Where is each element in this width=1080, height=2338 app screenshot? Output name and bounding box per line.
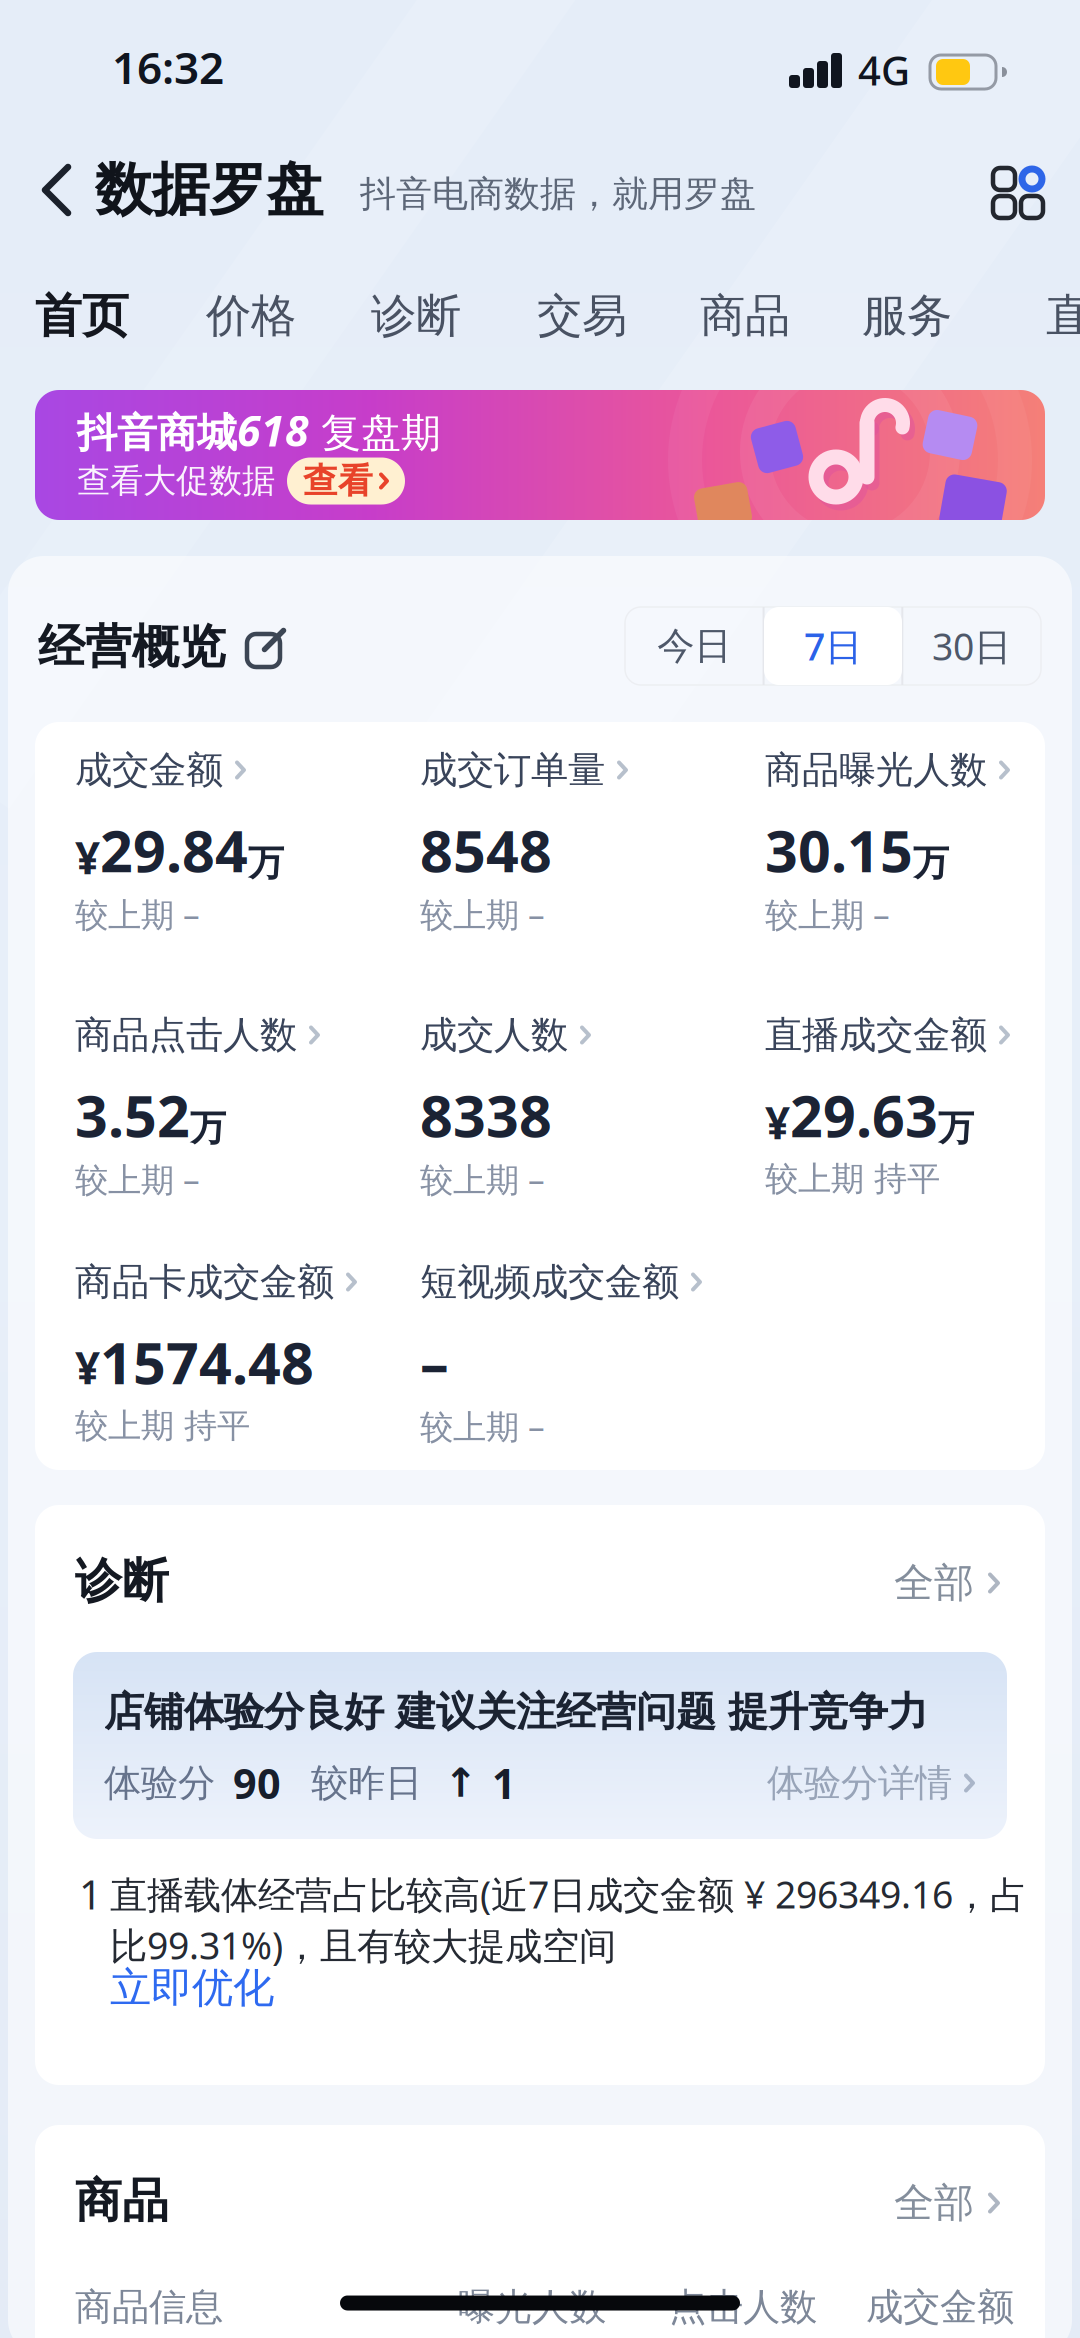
button[interactable]: 直播成交金额 [765, 1002, 1080, 1217]
staticText: 8548 [420, 812, 552, 888]
button[interactable]: 立即优化 [110, 1960, 300, 2016]
staticText: ↑ [444, 1760, 478, 1806]
staticText: 服务 [862, 288, 952, 344]
staticText: 直播 [1046, 288, 1080, 344]
button[interactable]: 商品 [700, 283, 810, 349]
staticText: 较上期 持平 [75, 1405, 250, 1446]
staticText: 16:32 [112, 38, 224, 96]
staticText: 立即优化 [110, 1963, 274, 2013]
button[interactable]: Back [38, 162, 76, 218]
button[interactable]: 交易 [537, 283, 647, 349]
staticText: 首页 [35, 287, 129, 345]
button[interactable]: 全部 [840, 2171, 1000, 2235]
staticText: 短视频成交金额 [420, 1259, 679, 1305]
button[interactable]: 商品曝光人数 [765, 737, 1080, 952]
staticText: 成交订单量 [420, 747, 605, 793]
staticText: 商品信息 [75, 2284, 223, 2330]
staticText: 比99.31%)，且有较大提成空间 [110, 1920, 616, 1970]
button[interactable]: 抖音商城618 复盘期 [35, 390, 1045, 520]
staticText: 体验分详情 [767, 1760, 952, 1806]
button[interactable]: 体验分详情 [695, 1754, 975, 1812]
staticText: 直播成交金额 [765, 1012, 987, 1058]
staticText: 7日 [804, 621, 862, 671]
button[interactable]: 成交人数 [420, 1002, 750, 1217]
button[interactable]: 价格 [206, 283, 316, 349]
staticText: 3.52万 [75, 1077, 226, 1153]
button[interactable]: 短视频成交金额 [420, 1249, 750, 1464]
staticText: 点击人数 [669, 2284, 817, 2330]
staticText: 查看 [303, 460, 373, 502]
staticText: – [420, 1324, 449, 1400]
button[interactable]: 首页 [35, 283, 145, 349]
staticText: ¥29.63万 [765, 1077, 974, 1153]
staticText: 数据罗盘 [95, 155, 323, 225]
button[interactable]: 7日 [764, 607, 902, 685]
staticText: 较上期 – [765, 892, 890, 936]
button[interactable]: More apps [993, 168, 1043, 218]
staticText: 商品 [75, 2172, 169, 2230]
staticText: 商品 [700, 288, 790, 344]
button[interactable]: 今日 [625, 607, 764, 685]
staticText: ¥29.84万 [75, 812, 284, 888]
staticText: 成交金额 [75, 747, 223, 793]
staticText: 诊断 [75, 1552, 169, 1610]
button[interactable]: 30日 [902, 607, 1041, 685]
staticText: 较昨日 [311, 1760, 422, 1806]
staticText: 交易 [537, 288, 627, 344]
staticText: 30日 [932, 621, 1011, 671]
staticText: 1 [79, 1867, 102, 1920]
staticText: 较上期 – [75, 892, 200, 936]
staticText: 90 [233, 1756, 281, 1810]
staticText: 曝光人数 [458, 2284, 606, 2330]
staticText: 抖音商城618 复盘期 [77, 402, 441, 458]
staticText: 诊断 [371, 288, 461, 344]
button[interactable]: 诊断 [371, 283, 481, 349]
staticText: 较上期 – [420, 892, 545, 936]
staticText: 商品卡成交金额 [75, 1259, 334, 1305]
staticText: 查看大促数据 [77, 460, 275, 501]
staticText: 经营概览 [38, 618, 226, 676]
staticText: 商品点击人数 [75, 1012, 297, 1058]
staticText: 店铺体验分良好 建议关注经营问题 提升竞争力 [104, 1687, 928, 1736]
button[interactable]: 服务 [862, 283, 972, 349]
staticText: 30.15万 [765, 812, 949, 888]
button[interactable]: 商品卡成交金额 [75, 1249, 405, 1464]
button[interactable]: Edit [246, 627, 288, 669]
button[interactable]: 直播 [1046, 283, 1080, 349]
staticText: 较上期 – [420, 1404, 545, 1448]
staticText: 较上期 – [420, 1157, 545, 1201]
button[interactable]: 成交订单量 [420, 737, 750, 952]
staticText: 1 [492, 1756, 516, 1810]
button[interactable]: 查看 [287, 457, 405, 504]
staticText: 成交人数 [420, 1012, 568, 1058]
staticText: 直播载体经营占比较高(近7日成交金额 ¥ 296349.16，占 [110, 1869, 1027, 1919]
staticText: 全部 [894, 1558, 974, 1607]
staticText: 抖音电商数据，就用罗盘 [360, 172, 756, 216]
staticText: 8338 [420, 1077, 552, 1153]
staticText: 商品曝光人数 [765, 747, 987, 793]
button[interactable]: 成交金额 [75, 737, 405, 952]
staticText: 成交金额 [866, 2284, 1014, 2330]
staticText: 较上期 持平 [765, 1158, 940, 1199]
staticText: 4G [858, 43, 910, 96]
staticText: 今日 [657, 623, 731, 669]
staticText: 全部 [894, 2178, 974, 2227]
button[interactable]: 商品点击人数 [75, 1002, 405, 1217]
button[interactable]: 全部 [840, 1551, 1000, 1615]
staticText: 价格 [206, 288, 296, 344]
staticText: 体验分 [104, 1760, 215, 1806]
staticText: ¥1574.48 [75, 1324, 314, 1400]
staticText: 较上期 – [75, 1157, 200, 1201]
